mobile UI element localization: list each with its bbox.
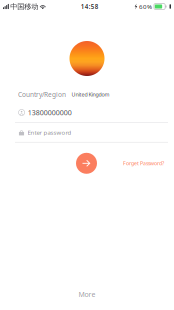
staticText: More: [78, 290, 95, 299]
staticText: United Kingdom: [71, 91, 109, 98]
staticText: 13800000000: [28, 108, 72, 117]
staticText: 中国移动: [10, 2, 38, 11]
staticText: Country/Region: [18, 90, 66, 99]
button[interactable]: Forget Password?: [123, 160, 164, 167]
staticText: Enter password: [27, 128, 71, 136]
button[interactable]: More: [78, 290, 95, 299]
staticText: Forget Password?: [123, 160, 164, 167]
staticText: 14:58: [81, 2, 99, 11]
button[interactable]: Sign in: [76, 153, 97, 174]
staticText: 60%: [139, 2, 152, 11]
